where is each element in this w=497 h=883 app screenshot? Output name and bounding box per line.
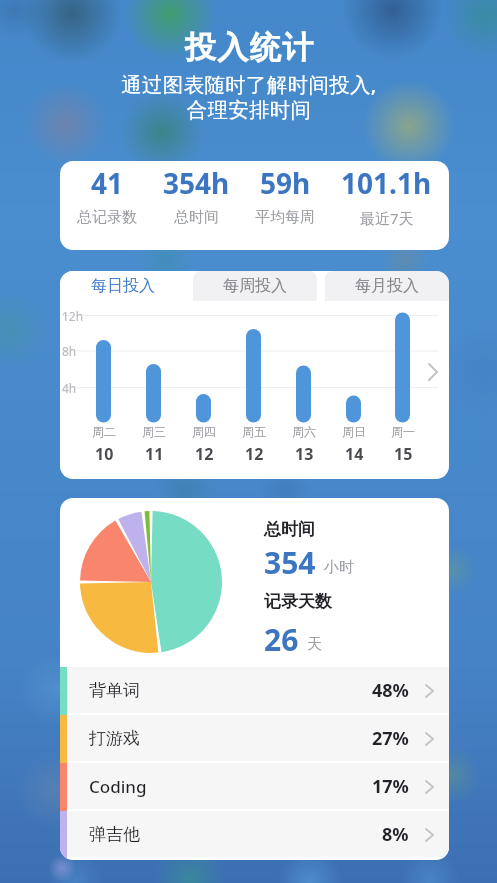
staticText: 周四	[192, 424, 216, 439]
staticText: 记录天数	[264, 591, 332, 612]
staticText: 周二	[92, 424, 116, 439]
staticText: 投入统计	[184, 28, 314, 67]
staticText: 17%	[372, 774, 409, 799]
staticText: 最近7天	[360, 208, 414, 228]
staticText: 8%	[382, 822, 409, 847]
staticText: 背单词	[89, 680, 140, 701]
staticText: Coding	[89, 775, 147, 798]
staticText: 总时间	[264, 519, 315, 540]
staticText: 每日投入	[91, 276, 155, 296]
button[interactable]: 每月投入	[325, 271, 449, 301]
button[interactable]: 每周投入	[193, 271, 317, 301]
staticText: 平均每周	[255, 208, 315, 227]
staticText: 总记录数	[77, 208, 137, 227]
staticText: 27%	[372, 726, 409, 751]
staticText: 周日	[342, 424, 366, 439]
staticText: 12	[195, 443, 214, 464]
staticText: 14	[345, 443, 364, 464]
button[interactable]: 每日投入	[60, 271, 185, 301]
staticText: 小时	[324, 558, 354, 577]
staticText: 每周投入	[223, 276, 287, 296]
staticText: 101.1h	[341, 164, 432, 202]
staticText: 4h	[62, 380, 77, 396]
staticText: 354h	[163, 164, 230, 202]
staticText: 8h	[62, 343, 77, 359]
button[interactable]: 背单词	[60, 667, 449, 715]
button[interactable]: 弹吉他	[60, 811, 449, 859]
staticText: 12	[245, 443, 264, 464]
staticText: 59h	[260, 164, 311, 202]
staticText: 11	[145, 443, 164, 464]
staticText: 周六	[292, 424, 316, 439]
staticText: 354	[264, 542, 316, 583]
staticText: 每月投入	[355, 276, 419, 296]
staticText: 总时间	[174, 208, 219, 227]
staticText: 周三	[142, 424, 166, 439]
staticText: 13	[295, 443, 314, 464]
staticText: 10	[95, 443, 114, 464]
button[interactable]: Coding	[60, 763, 449, 811]
staticText: 41	[91, 164, 124, 202]
staticText: 12h	[62, 308, 84, 324]
staticText: 26	[264, 619, 299, 660]
button[interactable]: 打游戏	[60, 715, 449, 763]
staticText: 通过图表随时了解时间投入, 合理安排时间	[121, 70, 377, 124]
staticText: 打游戏	[89, 728, 140, 749]
staticText: 弹吉他	[89, 824, 140, 845]
staticText: 周一	[391, 424, 415, 439]
staticText: 周五	[242, 424, 266, 439]
staticText: 15	[394, 443, 413, 464]
staticText: 天	[307, 635, 322, 654]
staticText: 48%	[372, 678, 409, 703]
